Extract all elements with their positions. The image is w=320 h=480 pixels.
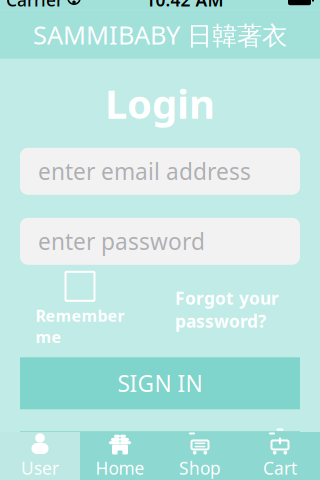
staticText: Forgot your <box>175 286 279 309</box>
staticText: password? <box>175 310 266 333</box>
staticText: SAMMIBABY 日韓著衣 <box>33 18 287 52</box>
button[interactable]: Cart <box>240 432 320 480</box>
staticText: 10:42 AM <box>145 0 223 11</box>
staticText: SIGN UP <box>114 442 205 472</box>
staticText: User <box>21 456 59 479</box>
button[interactable]: Remember me <box>25 272 135 347</box>
button[interactable]: Forgot your <box>175 286 295 332</box>
staticText: Cart <box>263 456 297 479</box>
staticText: enter password <box>38 226 205 256</box>
staticText: Home <box>95 456 144 479</box>
staticText: enter email address <box>38 156 251 186</box>
staticText: SIGN IN <box>117 368 202 398</box>
button[interactable]: Home <box>80 432 160 480</box>
staticText: Carrier <box>6 0 63 11</box>
button[interactable]: User <box>0 432 80 480</box>
button[interactable]: Shop <box>160 432 240 480</box>
button[interactable]: SIGN IN <box>20 357 300 409</box>
staticText: Shop <box>179 456 221 479</box>
staticText: Remember me <box>35 305 124 347</box>
staticText: Login <box>105 77 215 130</box>
button[interactable]: SIGN UP <box>20 431 300 480</box>
